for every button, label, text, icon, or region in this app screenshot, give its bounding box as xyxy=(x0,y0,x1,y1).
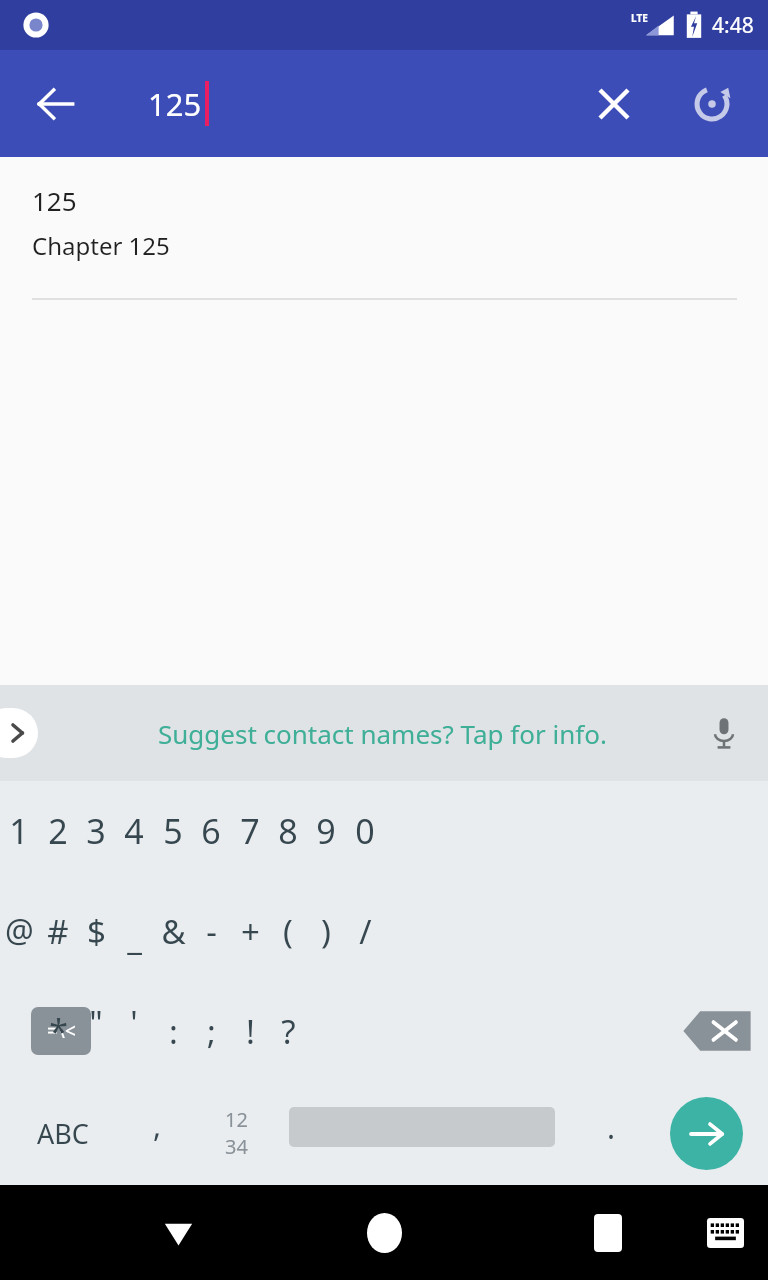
staticText: . xyxy=(607,1107,616,1148)
staticText: 7 xyxy=(240,808,260,854)
staticText: ( xyxy=(283,909,293,954)
button[interactable]: 6 xyxy=(173,781,249,881)
button[interactable]: 0 xyxy=(327,781,403,881)
button[interactable]: * xyxy=(20,981,96,1081)
staticText: 125 xyxy=(148,83,202,125)
button[interactable]: - xyxy=(173,881,249,981)
button[interactable]: 2 xyxy=(20,781,96,881)
staticText: ! xyxy=(246,1009,255,1054)
staticText: _ xyxy=(127,915,142,960)
button[interactable]: 8 xyxy=(250,781,326,881)
staticText: 34 xyxy=(225,1133,248,1160)
staticText: Chapter 125 xyxy=(32,229,170,262)
staticText: 4:48 xyxy=(712,11,754,40)
staticText: 1 xyxy=(9,808,29,854)
button[interactable]: Enter xyxy=(670,1097,743,1170)
button[interactable]: Clear search xyxy=(578,68,650,140)
button[interactable]: Backspace xyxy=(682,1005,752,1057)
staticText: , xyxy=(153,1105,162,1146)
button[interactable]: 9 xyxy=(288,781,364,881)
staticText: : xyxy=(169,1009,178,1054)
button[interactable]: " xyxy=(58,981,134,1081)
button[interactable]: ABC xyxy=(18,1081,108,1185)
button[interactable]: @ xyxy=(0,881,57,981)
button[interactable]: / xyxy=(327,881,403,981)
button[interactable]: + xyxy=(212,881,288,981)
staticText: / xyxy=(359,909,372,954)
staticText: 0 xyxy=(355,808,375,854)
button[interactable]: 1 xyxy=(0,781,57,881)
button[interactable]: 7 xyxy=(212,781,288,881)
button[interactable]: Recent apps xyxy=(558,1185,658,1280)
button[interactable]: & xyxy=(135,881,211,981)
button[interactable]: Voice input xyxy=(698,707,750,759)
staticText: ABC xyxy=(37,1115,89,1152)
staticText: 12 xyxy=(225,1106,248,1133)
button[interactable]: ' xyxy=(96,981,172,1081)
button[interactable]: # xyxy=(20,881,96,981)
staticText: 9 xyxy=(316,808,336,854)
staticText: 2 xyxy=(48,808,68,854)
staticText: $ xyxy=(87,909,106,954)
button[interactable]: Hide keyboard xyxy=(128,1185,228,1280)
button[interactable]: 125 xyxy=(0,179,768,266)
button[interactable]: ; xyxy=(173,981,249,1081)
staticText: ) xyxy=(321,909,331,954)
button[interactable]: ? xyxy=(250,981,326,1081)
staticText: - xyxy=(206,909,217,954)
staticText: ; xyxy=(207,1009,216,1054)
button[interactable]: Back xyxy=(20,68,92,140)
staticText: 4 xyxy=(124,808,144,854)
button[interactable]: _ xyxy=(96,881,172,981)
button[interactable]: , xyxy=(122,1081,192,1185)
staticText: ' xyxy=(130,1000,138,1045)
button[interactable]: ) xyxy=(288,881,364,981)
staticText: LTE xyxy=(631,11,648,25)
button[interactable]: 12 xyxy=(198,1081,274,1185)
staticText: 125 xyxy=(32,183,77,218)
button[interactable]: ( xyxy=(250,881,326,981)
button[interactable]: Expand suggestions xyxy=(0,708,38,758)
button[interactable]: 4 xyxy=(96,781,172,881)
staticText: 8 xyxy=(278,808,298,854)
button[interactable]: Suggest contact names? Tap for info. xyxy=(158,716,607,751)
button[interactable]: Switch keyboard xyxy=(696,1204,754,1262)
button[interactable]: . xyxy=(578,1081,644,1185)
staticText: & xyxy=(161,909,186,954)
staticText: =\< xyxy=(47,1018,76,1044)
staticText: + xyxy=(241,909,260,954)
button[interactable]: Refresh xyxy=(676,68,748,140)
button[interactable]: ! xyxy=(212,981,288,1081)
staticText: @ xyxy=(5,909,34,953)
button[interactable]: Home xyxy=(334,1185,434,1280)
staticText: 3 xyxy=(86,808,106,854)
staticText: " xyxy=(89,1000,103,1045)
button[interactable]: 3 xyxy=(58,781,134,881)
button[interactable]: =\< xyxy=(31,1007,91,1055)
staticText: 6 xyxy=(201,808,221,854)
staticText: * xyxy=(49,1008,68,1054)
button[interactable]: $ xyxy=(58,881,134,981)
staticText: # xyxy=(47,909,69,954)
staticText: 5 xyxy=(163,808,183,854)
button[interactable]: : xyxy=(135,981,211,1081)
staticText: ? xyxy=(281,1009,296,1054)
button[interactable]: 5 xyxy=(135,781,211,881)
